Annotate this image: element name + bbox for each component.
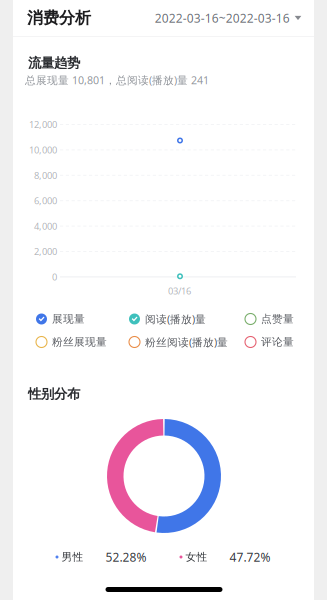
staticText: 03/16	[168, 285, 191, 297]
staticText: 2022-03-16~2022-03-16	[155, 10, 290, 26]
staticText: 男性	[61, 550, 83, 564]
staticText: 粉丝展现量	[52, 335, 107, 349]
staticText: 总展现量 10,801，总阅读(播放)量 241	[25, 73, 209, 87]
staticText: 性别分布	[28, 386, 80, 402]
staticText: 0	[52, 270, 57, 283]
button[interactable]: 评论量	[245, 335, 327, 349]
staticText: 消费分析	[27, 8, 91, 28]
button[interactable]: 2022-03-16~2022-03-16	[152, 7, 304, 29]
staticText: 6,000	[34, 194, 57, 207]
staticText: 流量趋势	[28, 55, 80, 71]
staticText: 评论量	[261, 335, 294, 349]
staticText: 4,000	[34, 220, 57, 232]
staticText: 粉丝阅读(播放)量	[145, 335, 228, 349]
staticText: 52.28%	[105, 549, 146, 565]
button[interactable]: 粉丝阅读(播放)量	[129, 335, 249, 349]
staticText: 展现量	[52, 312, 85, 326]
staticText: 点赞量	[261, 312, 294, 326]
staticText: 10,000	[29, 143, 57, 156]
staticText: 47.72%	[229, 549, 270, 565]
button[interactable]: 展现量	[36, 312, 156, 326]
button[interactable]: 阅读(播放)量	[129, 312, 249, 326]
staticText: 12,000	[29, 118, 57, 131]
staticText: 女性	[185, 550, 207, 564]
button[interactable]: 点赞量	[245, 312, 327, 326]
staticText: 阅读(播放)量	[145, 312, 206, 326]
staticText: 2,000	[34, 245, 57, 258]
button[interactable]: 粉丝展现量	[36, 335, 156, 349]
staticText: 8,000	[34, 169, 57, 182]
